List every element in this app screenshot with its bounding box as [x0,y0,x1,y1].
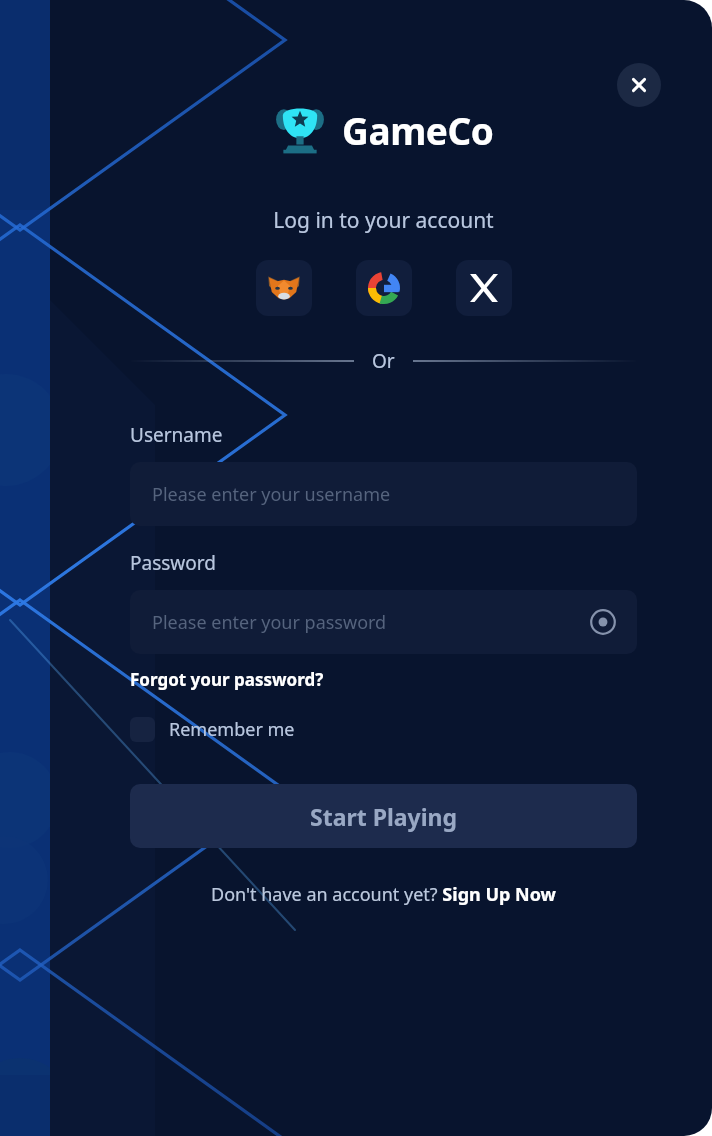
staticText: Don't have an account yet? Sign Up Now [211,882,556,907]
staticText: Please enter your password [152,610,387,635]
staticText: Start Playing [310,801,458,832]
staticText: Forgot your password? [130,668,324,691]
button[interactable]: Please enter your password [130,590,637,654]
button[interactable]: Log in with X [456,260,512,316]
button[interactable]: Don't have an account yet? Sign Up Now [130,882,637,907]
staticText: Please enter your username [152,482,391,507]
staticText: Or [372,348,395,374]
button[interactable]: Forgot your password? [130,668,324,691]
staticText: Username [130,422,223,448]
button[interactable]: Please enter your username [130,462,637,526]
button[interactable]: Show password [583,602,623,642]
staticText: Password [130,550,216,576]
staticText: Remember me [169,717,295,742]
button[interactable]: Log in with Google [356,260,412,316]
button[interactable]: Log in with MetaMask [256,260,312,316]
button[interactable]: Remember me [130,717,295,742]
button[interactable]: Start Playing [130,784,637,848]
button[interactable]: Close [617,63,661,107]
staticText: GameCo [342,105,494,155]
staticText: Log in to your account [130,206,637,235]
